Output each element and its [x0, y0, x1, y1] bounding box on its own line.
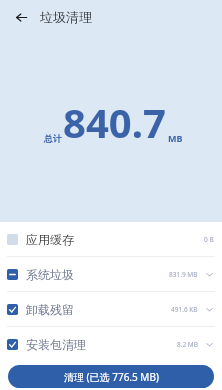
staticText: 系统垃圾 [26, 267, 74, 282]
staticText: 安装包清理 [26, 337, 86, 352]
staticText: 0 B [204, 235, 214, 244]
button[interactable]: Back [8, 4, 34, 30]
staticText: 垃圾清理 [40, 9, 92, 25]
button[interactable]: 安装包清理 [0, 327, 222, 361]
staticText: 8.2 MB [177, 340, 198, 349]
staticText: 831.9 MB [169, 270, 198, 279]
button[interactable]: 应用缓存 [0, 222, 222, 256]
staticText: 应用缓存 [26, 232, 74, 247]
button[interactable]: 系统垃圾 [0, 257, 222, 291]
staticText: 840.7 [63, 95, 166, 149]
staticText: MB [168, 132, 183, 144]
staticText: 卸载残留 [26, 302, 74, 317]
button[interactable]: 清理 (已选 776.5 MB) [8, 365, 214, 388]
staticText: 491.6 KB [171, 305, 198, 314]
staticText: 总计 [44, 133, 62, 144]
button[interactable]: 卸载残留 [0, 292, 222, 326]
staticText: 清理 (已选 776.5 MB) [64, 370, 159, 384]
